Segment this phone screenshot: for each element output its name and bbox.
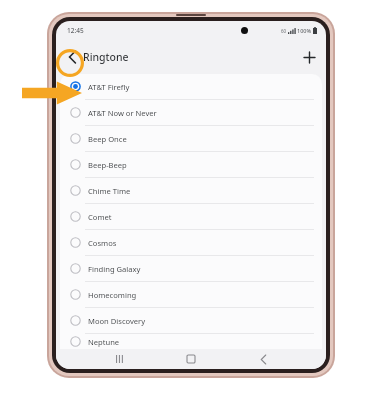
button[interactable]: Cosmos bbox=[60, 229, 322, 255]
staticText: Ringtone bbox=[83, 50, 129, 64]
button[interactable]: Chime Time bbox=[60, 177, 322, 203]
button[interactable]: Comet bbox=[60, 203, 322, 229]
staticText: AT&T Firefly bbox=[88, 82, 130, 92]
button[interactable]: Back bbox=[62, 47, 82, 67]
staticText: Beep-Beep bbox=[88, 160, 127, 170]
button[interactable]: Add ringtone bbox=[299, 47, 319, 67]
button[interactable]: AT&T Now or Never bbox=[60, 99, 322, 125]
staticText: 60 bbox=[281, 28, 287, 34]
button[interactable]: Beep Once bbox=[60, 125, 322, 151]
staticText: 100% bbox=[297, 27, 312, 34]
button[interactable]: Recents bbox=[106, 349, 132, 369]
staticText: AT&T Now or Never bbox=[88, 108, 157, 118]
staticText: Neptune bbox=[88, 337, 120, 347]
button[interactable]: Moon Discovery bbox=[60, 307, 322, 333]
button[interactable]: AT&T Firefly bbox=[60, 74, 322, 99]
button[interactable]: Homecoming bbox=[60, 281, 322, 307]
staticText: Homecoming bbox=[88, 290, 137, 300]
staticText: Beep Once bbox=[88, 134, 127, 144]
staticText: Chime Time bbox=[88, 186, 131, 196]
staticText: Finding Galaxy bbox=[88, 264, 141, 274]
button[interactable]: Neptune bbox=[60, 333, 322, 349]
staticText: Moon Discovery bbox=[88, 316, 146, 326]
staticText: Cosmos bbox=[88, 238, 117, 248]
button[interactable]: Back bbox=[250, 349, 276, 369]
staticText: 12:45 bbox=[67, 26, 84, 35]
button[interactable]: Home bbox=[178, 349, 204, 369]
staticText: Comet bbox=[88, 212, 112, 222]
button[interactable]: Finding Galaxy bbox=[60, 255, 322, 281]
button[interactable]: Beep-Beep bbox=[60, 151, 322, 177]
